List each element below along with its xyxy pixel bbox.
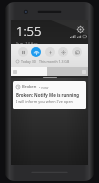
staticText: I will inform you when I've open network… (16, 99, 83, 104)
button[interactable]: Brightness (11, 67, 88, 76)
button[interactable]: Settings (77, 26, 84, 33)
button[interactable]: Quick setting (72, 47, 82, 57)
button[interactable]: Wi-Fi on (31, 47, 41, 57)
staticText: Broken: Notify Me is running (16, 92, 80, 98)
button[interactable]: Quick setting (58, 47, 68, 57)
button[interactable]: Quick setting (45, 47, 55, 57)
staticText: This month 1.3 GB (39, 59, 70, 64)
staticText: Sun, 14 Apr (16, 41, 38, 44)
button[interactable]: Quick setting (18, 47, 28, 57)
button[interactable]: Broken (13, 81, 86, 109)
staticText: Today 30 (21, 59, 36, 64)
staticText: • now (39, 85, 49, 90)
staticText: Broken (22, 84, 37, 90)
staticText: 1:55 (16, 22, 42, 40)
